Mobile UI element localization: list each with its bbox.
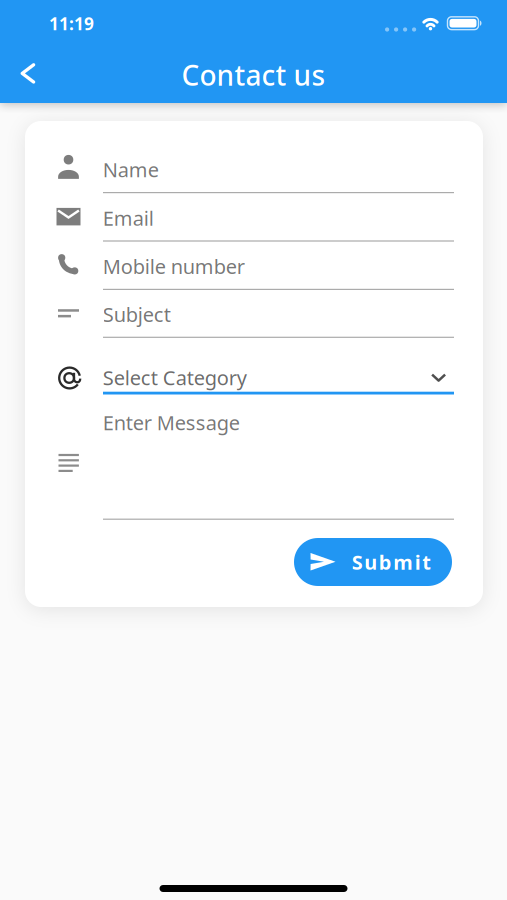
- button[interactable]: Select Category: [25, 351, 483, 407]
- button[interactable]: Name: [25, 145, 483, 194]
- staticText: Mobile number: [103, 253, 245, 280]
- staticText: Enter Message: [103, 409, 240, 436]
- button[interactable]: Email: [25, 194, 483, 242]
- staticText: Email: [103, 205, 154, 231]
- staticText: Name: [103, 156, 159, 183]
- button[interactable]: Back: [6, 51, 50, 95]
- button[interactable]: Enter Message: [25, 405, 483, 520]
- button[interactable]: Submit: [294, 538, 452, 586]
- staticText: Subject: [103, 301, 171, 327]
- staticText: Contact us: [181, 56, 325, 93]
- staticText: Submit: [352, 549, 431, 575]
- button[interactable]: Subject: [25, 290, 483, 338]
- staticText: Select Category: [103, 364, 247, 391]
- button[interactable]: Mobile number: [25, 242, 483, 290]
- staticText: 11:19: [49, 12, 94, 35]
